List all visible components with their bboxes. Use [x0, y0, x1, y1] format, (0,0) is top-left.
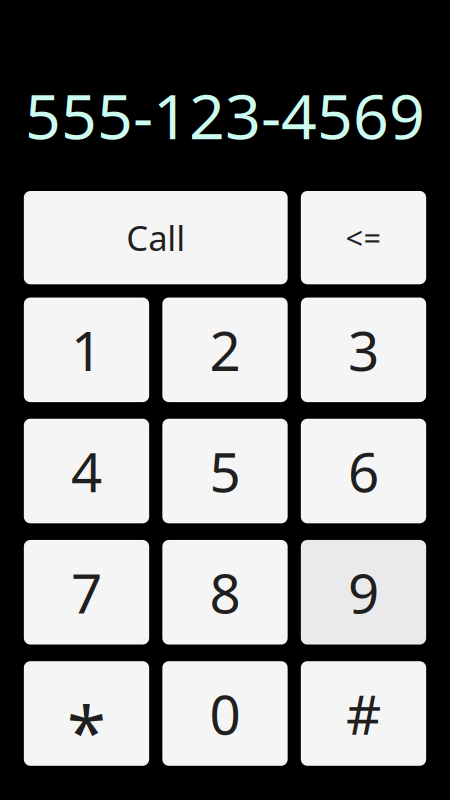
staticText: 555-123-4569 [25, 73, 425, 157]
staticText: Call [126, 215, 185, 261]
button[interactable]: 7 [24, 540, 149, 645]
staticText: 4 [71, 435, 102, 507]
button[interactable]: 0 [162, 661, 288, 766]
staticText: 0 [209, 677, 240, 750]
staticText: * [67, 684, 106, 777]
button[interactable]: Star [24, 661, 149, 766]
button[interactable]: 5 [162, 419, 288, 523]
button[interactable]: 3 [301, 297, 426, 402]
button[interactable]: 8 [162, 540, 288, 645]
staticText: 6 [348, 435, 379, 507]
button[interactable]: Backspace [301, 191, 426, 284]
staticText: 8 [209, 556, 240, 629]
staticText: 9 [348, 556, 379, 629]
staticText: <= [345, 217, 381, 258]
staticText: 2 [209, 313, 240, 386]
button[interactable]: Pound [301, 661, 426, 766]
button[interactable]: Call [24, 191, 288, 284]
button[interactable]: 9 [301, 540, 426, 645]
staticText: 7 [71, 556, 102, 629]
staticText: 5 [209, 435, 240, 507]
button[interactable]: 4 [24, 419, 149, 523]
staticText: # [346, 677, 381, 750]
button[interactable]: 2 [162, 297, 288, 402]
staticText: 3 [348, 313, 379, 386]
button[interactable]: 1 [24, 297, 149, 402]
button[interactable]: 6 [301, 419, 426, 523]
staticText: 1 [71, 313, 102, 386]
